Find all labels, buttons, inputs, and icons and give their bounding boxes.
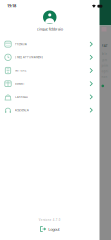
staticText: Versione 4.7.0 — [39, 218, 61, 222]
staticText: BENEFIT — [15, 82, 24, 85]
staticText: FATTURE — [15, 69, 26, 72]
staticText: ASSISTENZA — [15, 108, 29, 112]
button[interactable]: PRENOTA — [0, 37, 99, 51]
staticText: Logout — [48, 226, 59, 232]
staticText: FAT — [101, 43, 107, 48]
staticText: prim — [101, 64, 107, 67]
staticText: Sele — [101, 52, 107, 56]
button[interactable]: FATTURE — [0, 64, 99, 77]
button[interactable]: ASSISTENZA — [0, 103, 99, 117]
staticText: non — [101, 75, 107, 79]
staticText: 19:18 — [7, 3, 16, 8]
staticText: CARRELLO — [15, 95, 28, 99]
staticText: cinque febbraio — [37, 26, 63, 31]
staticText: PRENOTA — [15, 42, 27, 46]
button[interactable]: BENEFIT — [0, 77, 99, 90]
button[interactable]: I MIEI APPUNTAMENTI — [0, 51, 99, 64]
button[interactable]: Logout — [36, 224, 63, 234]
button[interactable]: CARRELLO — [0, 90, 99, 103]
staticText: La m — [101, 58, 106, 62]
staticText: I MIEI APPUNTAMENTI — [15, 55, 43, 59]
